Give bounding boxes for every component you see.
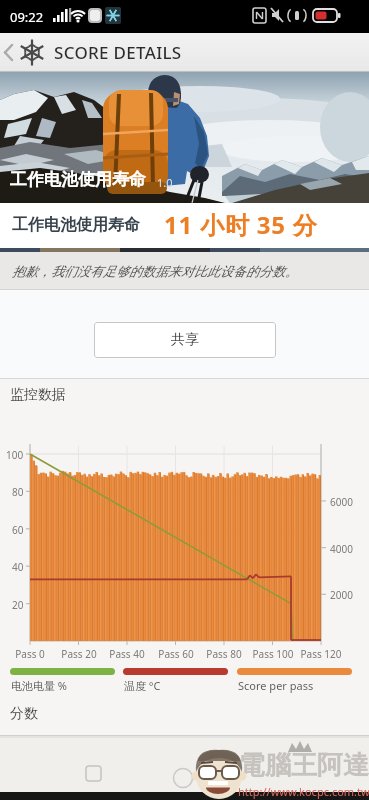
staticText: 電腦王阿達 — [239, 749, 369, 782]
staticText: 工作电池使用寿命 — [10, 169, 146, 190]
staticText: Score per pass — [238, 678, 314, 693]
staticText: Pass 40 — [105, 647, 149, 661]
staticText: 电池电量 % — [11, 678, 68, 693]
staticText: 温度 °C — [124, 678, 161, 693]
staticText: 共享 — [171, 331, 199, 349]
staticText: SCORE DETAILS — [54, 41, 182, 64]
staticText: Pass 60 — [154, 647, 198, 661]
staticText: 09:22 — [10, 8, 44, 26]
staticText: 工作电池使用寿命 — [12, 215, 140, 235]
staticText: Pass 0 — [8, 647, 52, 661]
staticText: 分数 — [10, 705, 38, 723]
button[interactable]: 共享 — [94, 322, 276, 358]
staticText: 100 — [6, 448, 24, 462]
staticText: 11 小时 35 分 — [164, 208, 318, 241]
staticText: 6000 — [330, 495, 353, 509]
staticText: Pass 100 — [251, 647, 295, 661]
staticText: 60 — [12, 523, 24, 537]
staticText: 40 — [12, 560, 24, 574]
staticText: 1.0 — [157, 175, 173, 190]
staticText: 20 — [12, 598, 24, 612]
staticText: 抱歉，我们没有足够的数据来对比此设备的分数。 — [12, 263, 298, 279]
staticText: 80 — [12, 485, 24, 499]
staticText: Pass 20 — [57, 647, 101, 661]
button[interactable]: SCORE DETAILS — [0, 33, 369, 72]
staticText: 4000 — [330, 542, 353, 556]
staticText: http://www.kocpc.com.tw — [238, 784, 369, 799]
staticText: 监控数据 — [10, 386, 66, 404]
staticText: 2000 — [330, 588, 353, 602]
staticText: Pass 120 — [299, 647, 343, 661]
staticText: Pass 80 — [202, 647, 246, 661]
